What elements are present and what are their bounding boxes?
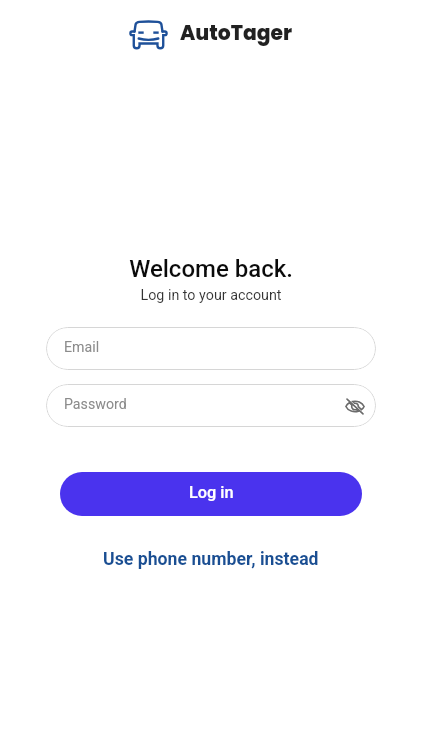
button[interactable]: Use phone number, instead <box>93 544 329 575</box>
button[interactable]: Email <box>46 327 376 370</box>
staticText: Log in <box>189 483 234 502</box>
staticText: Welcome back. <box>0 255 422 283</box>
staticText: Email <box>64 339 100 356</box>
staticText: Password <box>64 396 127 413</box>
staticText: Log in to your account <box>0 287 422 304</box>
button[interactable]: Show password <box>340 391 370 421</box>
button[interactable]: Password <box>46 384 376 427</box>
staticText: Use phone number, instead <box>103 549 319 570</box>
button[interactable]: Log in <box>60 472 362 516</box>
staticText: AutoTager <box>180 19 293 47</box>
